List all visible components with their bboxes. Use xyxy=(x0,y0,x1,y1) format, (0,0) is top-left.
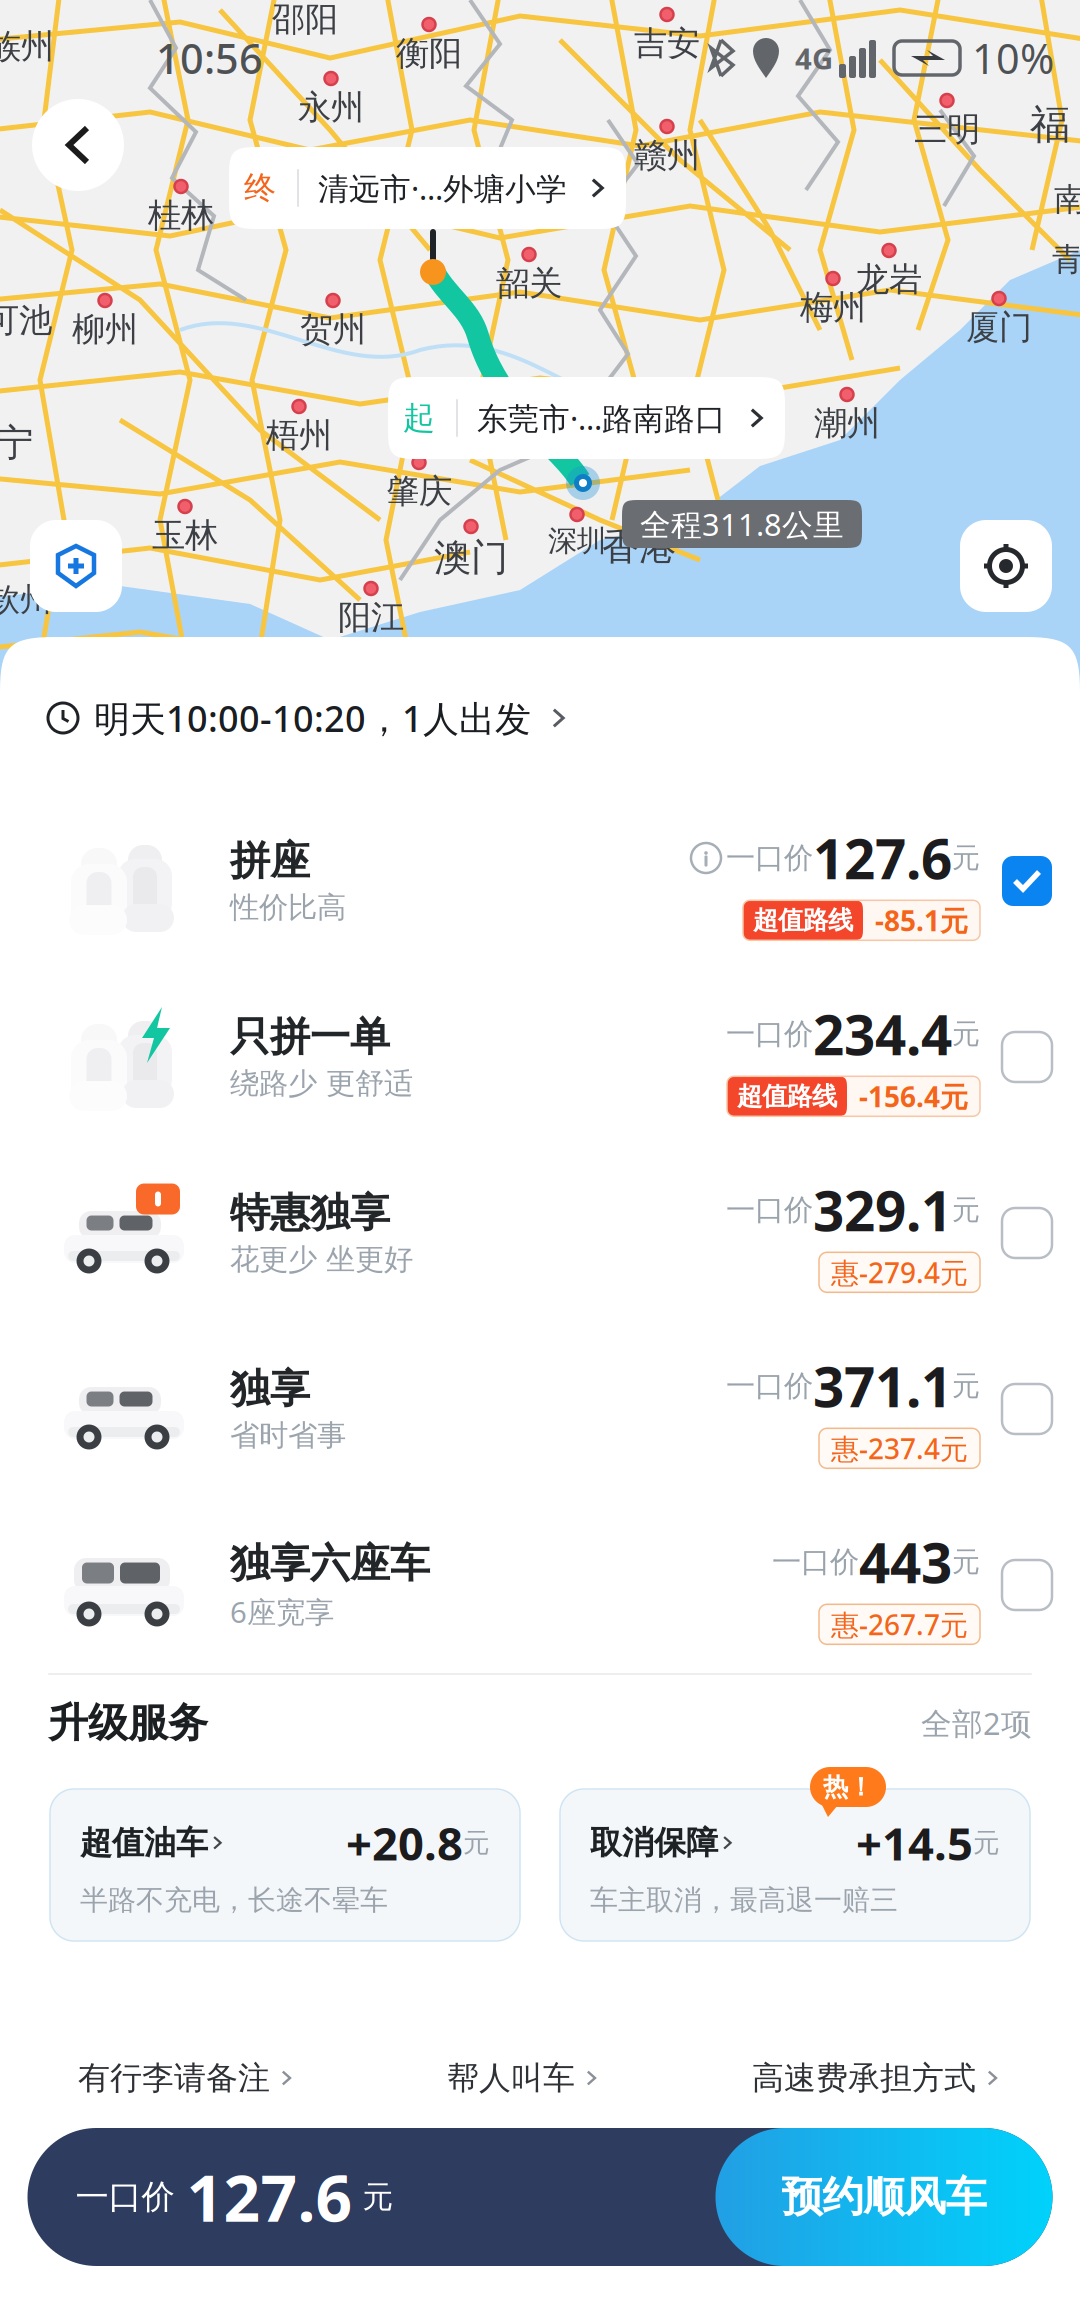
staticText: 拼座 xyxy=(230,836,310,885)
staticText: 元 xyxy=(952,1193,980,1227)
staticText: 元 xyxy=(952,1545,980,1579)
staticText: 终 xyxy=(244,168,276,208)
staticText: 邵阳 xyxy=(272,0,338,40)
staticText: 柳州 xyxy=(72,309,138,350)
staticText: 元 xyxy=(362,2178,393,2216)
staticText: 元 xyxy=(463,1826,490,1859)
staticText: 独享 xyxy=(230,1364,310,1413)
staticText: 4G xyxy=(795,38,833,77)
staticText: 肇庆 xyxy=(386,471,452,512)
button[interactable]: 帮人叫车 xyxy=(447,2045,601,2111)
staticText: 青 xyxy=(1052,240,1080,279)
staticText: 234.4 xyxy=(813,998,952,1070)
staticText: 升级服务 xyxy=(48,1698,208,1747)
staticText: 元 xyxy=(973,1826,1000,1859)
staticText: +20.8 xyxy=(346,1813,463,1873)
button[interactable]: 取消保障 xyxy=(560,1789,1030,1941)
staticText: 371.1 xyxy=(813,1350,952,1422)
staticText: 深圳 xyxy=(548,523,606,559)
button[interactable]: 明天10:00-10:20，1人出发 xyxy=(0,670,1080,766)
button[interactable]: 独享 xyxy=(0,1321,1080,1497)
staticText: 三明 xyxy=(914,109,980,150)
button[interactable]: Locate me xyxy=(960,520,1052,612)
staticText: 绕路少 更舒适 xyxy=(230,1066,413,1102)
staticText: 衡阳 xyxy=(396,33,462,74)
staticText: 127.6 xyxy=(813,822,952,894)
button[interactable]: 终 xyxy=(229,147,626,229)
staticText: 10:56 xyxy=(156,31,263,85)
staticText: 赣州 xyxy=(634,135,700,176)
staticText: 全部2项 xyxy=(921,1703,1032,1743)
staticText: 惠-279.4元 xyxy=(831,1254,968,1291)
staticText: 梅州 xyxy=(800,287,866,328)
staticText: 443 xyxy=(859,1526,952,1598)
staticText: 玉林 xyxy=(152,515,218,556)
button[interactable]: 高速费承担方式 xyxy=(752,2045,1002,2111)
staticText: 吉安 xyxy=(634,23,700,64)
staticText: 阳江 xyxy=(338,597,404,638)
button[interactable]: Safety center xyxy=(30,520,122,612)
button[interactable]: Back xyxy=(32,99,124,191)
staticText: 钦州 xyxy=(0,580,52,619)
staticText: 一口价 xyxy=(726,840,813,876)
staticText: 龙岩 xyxy=(856,259,922,300)
staticText: 127.6 xyxy=(186,2154,352,2239)
staticText: 元 xyxy=(952,1369,980,1403)
staticText: 10% xyxy=(972,31,1054,85)
staticText: 元 xyxy=(952,841,980,875)
staticText: 一口价 xyxy=(75,2176,174,2217)
staticText: +14.5 xyxy=(856,1813,973,1873)
staticText: 独享六座车 xyxy=(230,1539,430,1588)
button[interactable]: 只拼一单 xyxy=(0,969,1080,1145)
staticText: 329.1 xyxy=(813,1174,952,1246)
staticText: 桂林 xyxy=(148,195,214,236)
staticText: 省时省事 xyxy=(230,1418,346,1454)
staticText: 惠-267.7元 xyxy=(831,1606,968,1643)
staticText: 可池 xyxy=(0,300,52,341)
staticText: 车主取消，最高退一赔三 xyxy=(590,1883,898,1917)
button[interactable]: 有行李请备注 xyxy=(78,2045,296,2111)
staticText: 贺州 xyxy=(300,309,366,350)
staticText: 澳门 xyxy=(434,535,508,581)
staticText: 一口价 xyxy=(726,1016,813,1052)
staticText: 东莞市·…路南路口 xyxy=(477,398,726,438)
button[interactable]: 一口价 xyxy=(27,2128,1052,2266)
staticText: 韶关 xyxy=(496,263,562,304)
staticText: 香港 xyxy=(602,524,676,570)
staticText: 永州 xyxy=(298,87,364,128)
button[interactable]: 起 xyxy=(388,377,785,459)
button[interactable]: 独享六座车 xyxy=(0,1497,1080,1673)
staticText: 福 xyxy=(1030,100,1070,149)
button[interactable]: 超值油车 xyxy=(50,1789,520,1941)
staticText: 超值油车 xyxy=(80,1823,208,1862)
staticText: 明天10:00-10:20，1人出发 xyxy=(94,694,531,742)
staticText: 有行李请备注 xyxy=(78,2058,270,2098)
staticText: 半路不充电，长途不晕车 xyxy=(80,1883,388,1917)
staticText: 宁 xyxy=(0,420,33,466)
staticText: 惠-237.4元 xyxy=(831,1430,968,1467)
staticText: 预约顺风车 xyxy=(781,2172,986,2222)
staticText: 高速费承担方式 xyxy=(752,2058,976,2098)
staticText: 超值路线 xyxy=(737,1081,837,1112)
staticText: 花更少 坐更好 xyxy=(230,1242,413,1278)
staticText: 起 xyxy=(403,398,435,438)
staticText: 潮州 xyxy=(814,403,880,444)
staticText: 特惠独享 xyxy=(230,1188,390,1237)
staticText: 一口价 xyxy=(772,1544,859,1580)
staticText: 南 xyxy=(1054,180,1080,219)
staticText: 清远市·…外塘小学 xyxy=(318,168,567,208)
staticText: 性价比高 xyxy=(230,890,346,926)
button[interactable]: 特惠独享 xyxy=(0,1145,1080,1321)
staticText: 一口价 xyxy=(726,1192,813,1228)
staticText: 热！ xyxy=(823,1771,873,1802)
staticText: -85.1元 xyxy=(875,902,968,939)
staticText: 超值路线 xyxy=(753,905,853,936)
staticText: 只拼一单 xyxy=(230,1012,390,1061)
staticText: 帮人叫车 xyxy=(447,2058,575,2098)
staticText: -156.4元 xyxy=(859,1078,968,1115)
staticText: 族州 xyxy=(0,26,54,67)
staticText: 6座宽享 xyxy=(230,1592,334,1631)
staticText: 一口价 xyxy=(726,1368,813,1404)
button[interactable]: 拼座 xyxy=(0,793,1080,969)
staticText: 梧州 xyxy=(266,415,332,456)
